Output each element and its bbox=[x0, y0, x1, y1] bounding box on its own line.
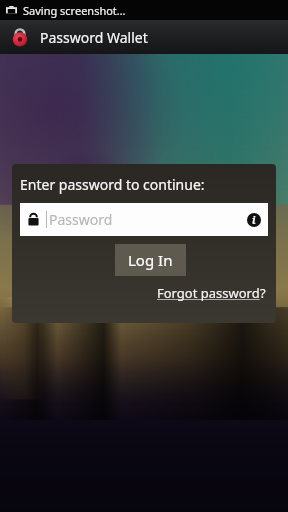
staticText: Password Wallet bbox=[40, 28, 148, 47]
staticText: Log In bbox=[128, 250, 173, 270]
staticText: Password bbox=[49, 210, 247, 229]
button[interactable]: Password bbox=[20, 203, 268, 236]
button[interactable]: Password Wallet bbox=[0, 20, 288, 54]
staticText: ? bbox=[260, 284, 266, 302]
staticText: Forgot password bbox=[157, 284, 260, 302]
button[interactable]: Log In bbox=[115, 244, 186, 276]
staticText: Saving screenshot… bbox=[23, 3, 126, 18]
staticText: i bbox=[252, 213, 256, 227]
button[interactable]: Forgot password bbox=[155, 283, 268, 303]
button[interactable]: Password info bbox=[247, 213, 261, 227]
staticText: Enter password to continue: bbox=[20, 175, 205, 194]
